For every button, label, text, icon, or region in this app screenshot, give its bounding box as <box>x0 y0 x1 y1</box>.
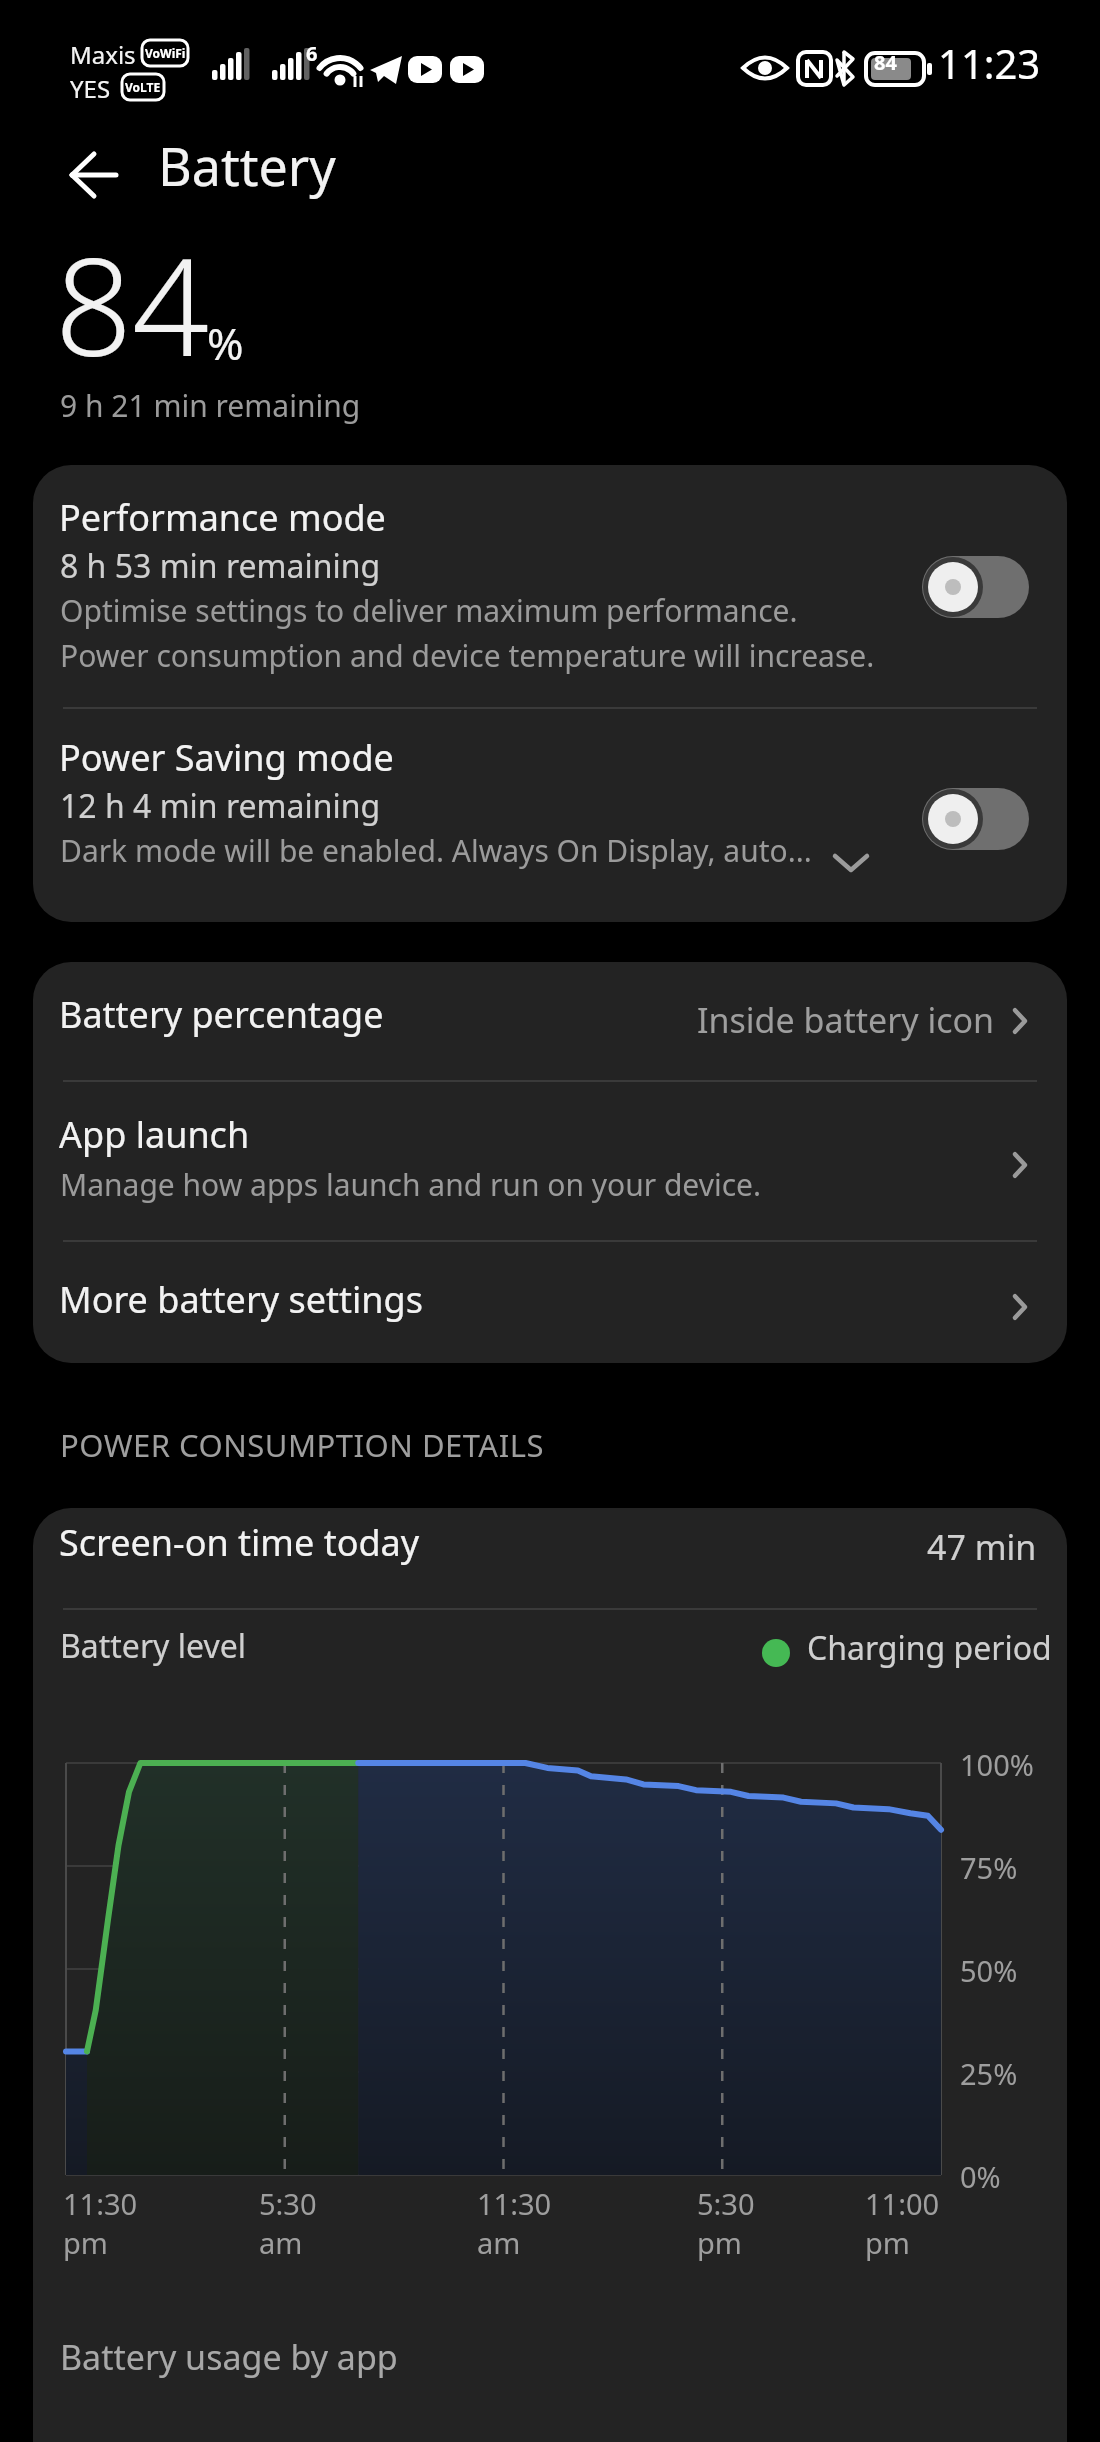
staticText: 0% <box>960 2157 1001 2196</box>
staticText: pm <box>63 2223 108 2262</box>
button[interactable] <box>922 556 1029 618</box>
staticText: 11:23 <box>938 36 1041 90</box>
staticText: Inside battery icon <box>697 997 995 1043</box>
staticText: POWER CONSUMPTION DETAILS <box>60 1424 544 1466</box>
staticText: 100% <box>960 1745 1034 1784</box>
staticText: 47 min <box>927 1524 1037 1570</box>
button[interactable] <box>33 1240 1067 1363</box>
staticText: YES <box>70 72 111 105</box>
staticText: Optimise settings to deliver maximum per… <box>60 590 798 631</box>
staticText: VoWiFi <box>145 45 186 61</box>
staticText: Screen-on time today <box>59 1518 420 1567</box>
staticText: Maxis <box>70 38 136 71</box>
staticText: 11:00 <box>865 2184 940 2223</box>
staticText: Battery percentage <box>59 990 384 1039</box>
button[interactable] <box>33 707 1067 922</box>
staticText: 8 h 53 min remaining <box>60 544 381 588</box>
staticText: 25% <box>960 2054 1018 2093</box>
staticText: Battery level <box>60 1624 246 1668</box>
staticText: am <box>259 2223 303 2262</box>
button[interactable] <box>33 962 1067 1080</box>
staticText: Manage how apps launch and run on your d… <box>60 1164 762 1205</box>
staticText: Power consumption and device temperature… <box>60 635 875 676</box>
staticText: 84 <box>874 49 897 76</box>
staticText: pm <box>865 2223 910 2262</box>
staticText: am <box>477 2223 521 2262</box>
staticText: 12 h 4 min remaining <box>60 784 381 828</box>
staticText: App launch <box>59 1110 250 1159</box>
button[interactable] <box>922 788 1029 850</box>
staticText: 50% <box>960 1951 1018 1990</box>
staticText: 9 h 21 min remaining <box>60 385 361 426</box>
staticText: 5:30 <box>259 2184 317 2223</box>
staticText: Performance mode <box>59 493 386 542</box>
staticText: 84 <box>55 212 210 396</box>
button[interactable] <box>33 1080 1067 1240</box>
button[interactable] <box>58 140 128 210</box>
staticText: Battery <box>158 130 336 201</box>
staticText: 75% <box>960 1848 1018 1887</box>
staticText: Charging period <box>807 1626 1052 1670</box>
staticText: Battery usage by app <box>60 2334 398 2380</box>
staticText: VoLTE <box>125 79 161 95</box>
staticText: 6 <box>306 40 318 67</box>
staticText: pm <box>697 2223 742 2262</box>
staticText: % <box>207 313 244 373</box>
button[interactable] <box>33 465 1067 705</box>
staticText: 5:30 <box>697 2184 755 2223</box>
staticText: 11:30 <box>477 2184 552 2223</box>
button[interactable] <box>33 1508 1067 1608</box>
staticText: Dark mode will be enabled. Always On Dis… <box>60 830 812 871</box>
staticText: 11:30 <box>63 2184 138 2223</box>
staticText: More battery settings <box>59 1275 423 1324</box>
staticText: Power Saving mode <box>59 733 394 782</box>
